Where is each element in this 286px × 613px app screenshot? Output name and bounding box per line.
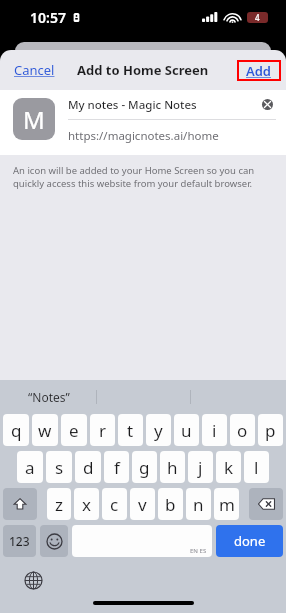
staticText: l (254, 456, 259, 479)
button[interactable]: j (188, 451, 213, 483)
button[interactable]: z (47, 488, 71, 520)
button[interactable]: e (61, 414, 87, 446)
staticText: w (38, 419, 52, 442)
button[interactable]: b (158, 488, 183, 520)
button[interactable]: l (244, 451, 269, 483)
button[interactable]: g (132, 451, 157, 483)
button[interactable]: Shift (3, 488, 37, 520)
staticText: b (165, 493, 176, 516)
staticText: k (224, 456, 234, 479)
staticText: u (181, 419, 192, 442)
button[interactable]: c (102, 488, 127, 520)
staticText: M (23, 103, 45, 136)
staticText: q (11, 419, 22, 442)
staticText: 4 (255, 12, 260, 23)
staticText: o (237, 419, 248, 442)
button[interactable]: r (90, 414, 115, 446)
button[interactable]: a (17, 451, 43, 483)
button[interactable]: Clear text (262, 99, 273, 110)
button[interactable]: t (118, 414, 143, 446)
staticText: 10:57 (30, 8, 66, 27)
staticText: j (198, 456, 203, 479)
staticText: p (265, 419, 276, 442)
button[interactable]: m (214, 488, 239, 520)
staticText: a (25, 456, 35, 479)
staticText: f (114, 456, 120, 479)
staticText: v (138, 493, 147, 516)
staticText: h (167, 456, 178, 479)
button[interactable]: Change keyboard language (25, 572, 42, 589)
button[interactable]: f (104, 451, 129, 483)
staticText: z (55, 493, 63, 516)
button[interactable]: w (32, 414, 58, 446)
staticText: n (193, 493, 204, 516)
staticText: c (110, 493, 119, 516)
button[interactable]: 123 (3, 525, 36, 557)
button[interactable]: Emoji (40, 525, 68, 557)
button[interactable]: v (130, 488, 155, 520)
button[interactable]: Cancel (10, 57, 59, 83)
button[interactable]: Add (239, 62, 279, 79)
staticText: d (83, 456, 94, 479)
staticText: Cancel (14, 61, 55, 79)
button[interactable]: s (46, 451, 72, 483)
staticText: x (82, 493, 91, 516)
button[interactable]: d (75, 451, 101, 483)
staticText: 123 (9, 533, 30, 549)
button[interactable]: o (230, 414, 255, 446)
button[interactable]: x (74, 488, 99, 520)
button[interactable]: h (160, 451, 185, 483)
button[interactable]: p (258, 414, 283, 446)
staticText: e (69, 419, 79, 442)
staticText: g (139, 456, 150, 479)
staticText: done (234, 532, 266, 550)
button[interactable]: Space (72, 525, 212, 557)
staticText: r (99, 419, 107, 442)
staticText: i (212, 419, 217, 442)
button[interactable]: y (146, 414, 171, 446)
staticText: y (154, 419, 163, 442)
button[interactable]: i (202, 414, 227, 446)
button[interactable]: Backspace (249, 488, 283, 520)
staticText: s (55, 456, 64, 479)
staticText: Add (246, 62, 272, 79)
staticText: EN ES (190, 547, 207, 555)
button[interactable]: n (186, 488, 211, 520)
button[interactable]: u (174, 414, 199, 446)
button[interactable]: done (216, 525, 283, 557)
staticText: m (219, 493, 235, 516)
staticText: My notes - Magic Notes (68, 97, 197, 113)
staticText: Add to Home Screen (77, 61, 209, 79)
button[interactable]: “Notes” (28, 389, 70, 405)
button[interactable]: k (216, 451, 241, 483)
staticText: https://magicnotes.ai/home (68, 128, 219, 144)
staticText: An icon will be added to your Home Scree… (13, 164, 266, 190)
staticText: t (127, 419, 134, 442)
button[interactable]: q (3, 414, 29, 446)
